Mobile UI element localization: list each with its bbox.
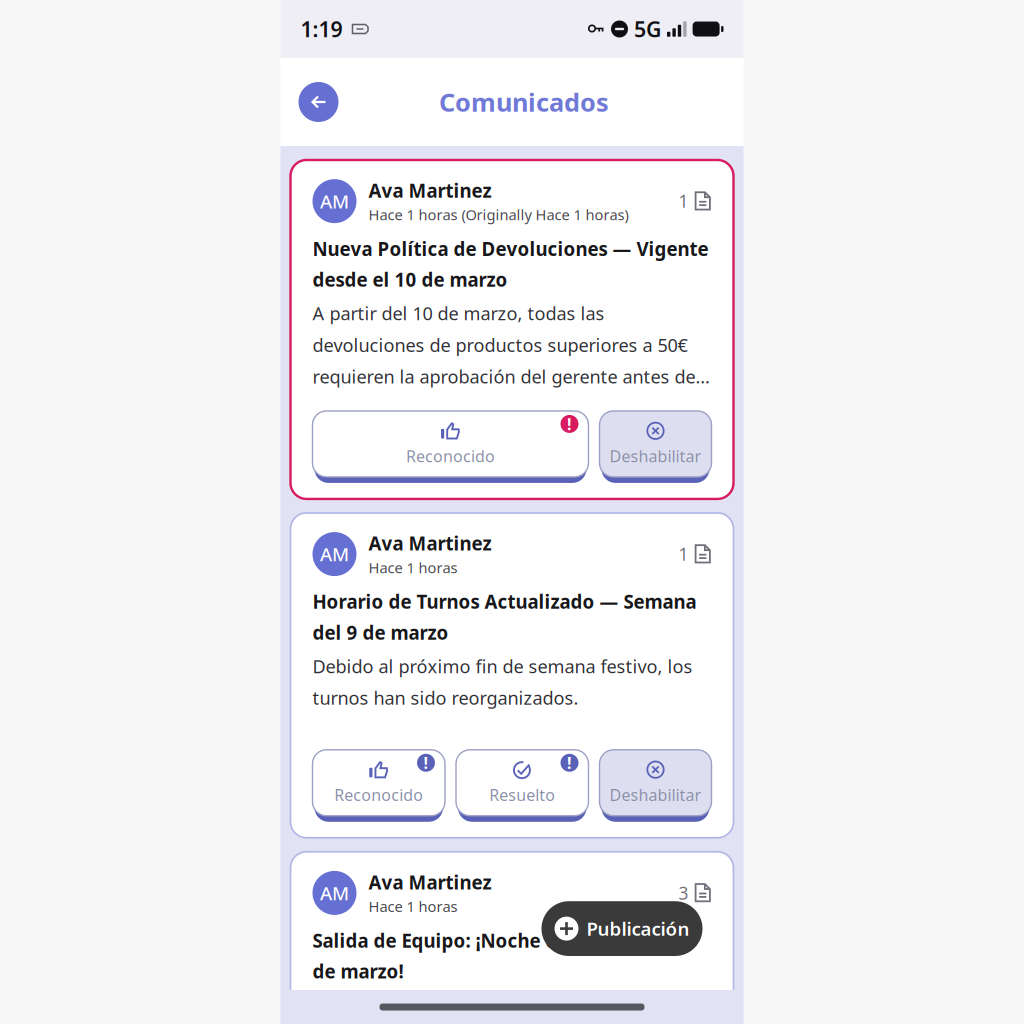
staticText: Nueva Política de Devoluciones — Vigente… [312,236,708,292]
staticText: Reconocido [334,784,423,805]
staticText: Ava Martinez [368,178,491,203]
staticText: AM [320,189,349,213]
staticText: Hace 1 horas [368,558,457,577]
staticText: 1 [678,543,688,566]
staticText: Salida de Equipo: ¡Noche de Bolos el 15 … [312,928,673,984]
staticText: Ava Martinez [368,870,491,895]
staticText: ! [423,752,428,773]
staticText: Hace 1 horas [368,897,457,916]
staticText: Horario de Turnos Actualizado — Semana d… [312,589,696,645]
staticText: A partir del 10 de marzo, todas las devo… [312,301,711,389]
button[interactable]: Reconocido [312,411,588,483]
button[interactable]: Deshabilitar [599,411,711,483]
staticText: AM [320,542,349,566]
staticText: Comunicados [439,85,609,119]
button[interactable]: Reconocido [312,750,445,822]
staticText: AM [320,880,349,905]
button[interactable]: Resuelto [456,750,588,822]
staticText: 1:19 [300,15,342,43]
staticText: Debido al próximo fin de semana festivo,… [312,654,692,710]
staticText: 1 [678,190,688,213]
staticText: Reconocido [406,445,495,466]
staticText: Resuelto [489,784,555,805]
staticText: Deshabilitar [609,445,701,466]
button[interactable]: Deshabilitar [599,750,711,822]
staticText: Hace 1 horas (Originally Hace 1 horas) [368,205,628,224]
staticText: Únete a nosotros el viernes por la noche… [312,993,699,1024]
staticText: Ava Martinez [368,531,491,556]
staticText: ! [567,413,572,434]
staticText: 3 [678,881,688,904]
staticText: 5G [634,15,661,43]
button[interactable]: Publicación [541,901,702,956]
staticText: Publicación [586,916,689,941]
staticText: Deshabilitar [609,784,701,805]
button[interactable]: Back [298,82,338,122]
staticText: ! [567,752,572,773]
